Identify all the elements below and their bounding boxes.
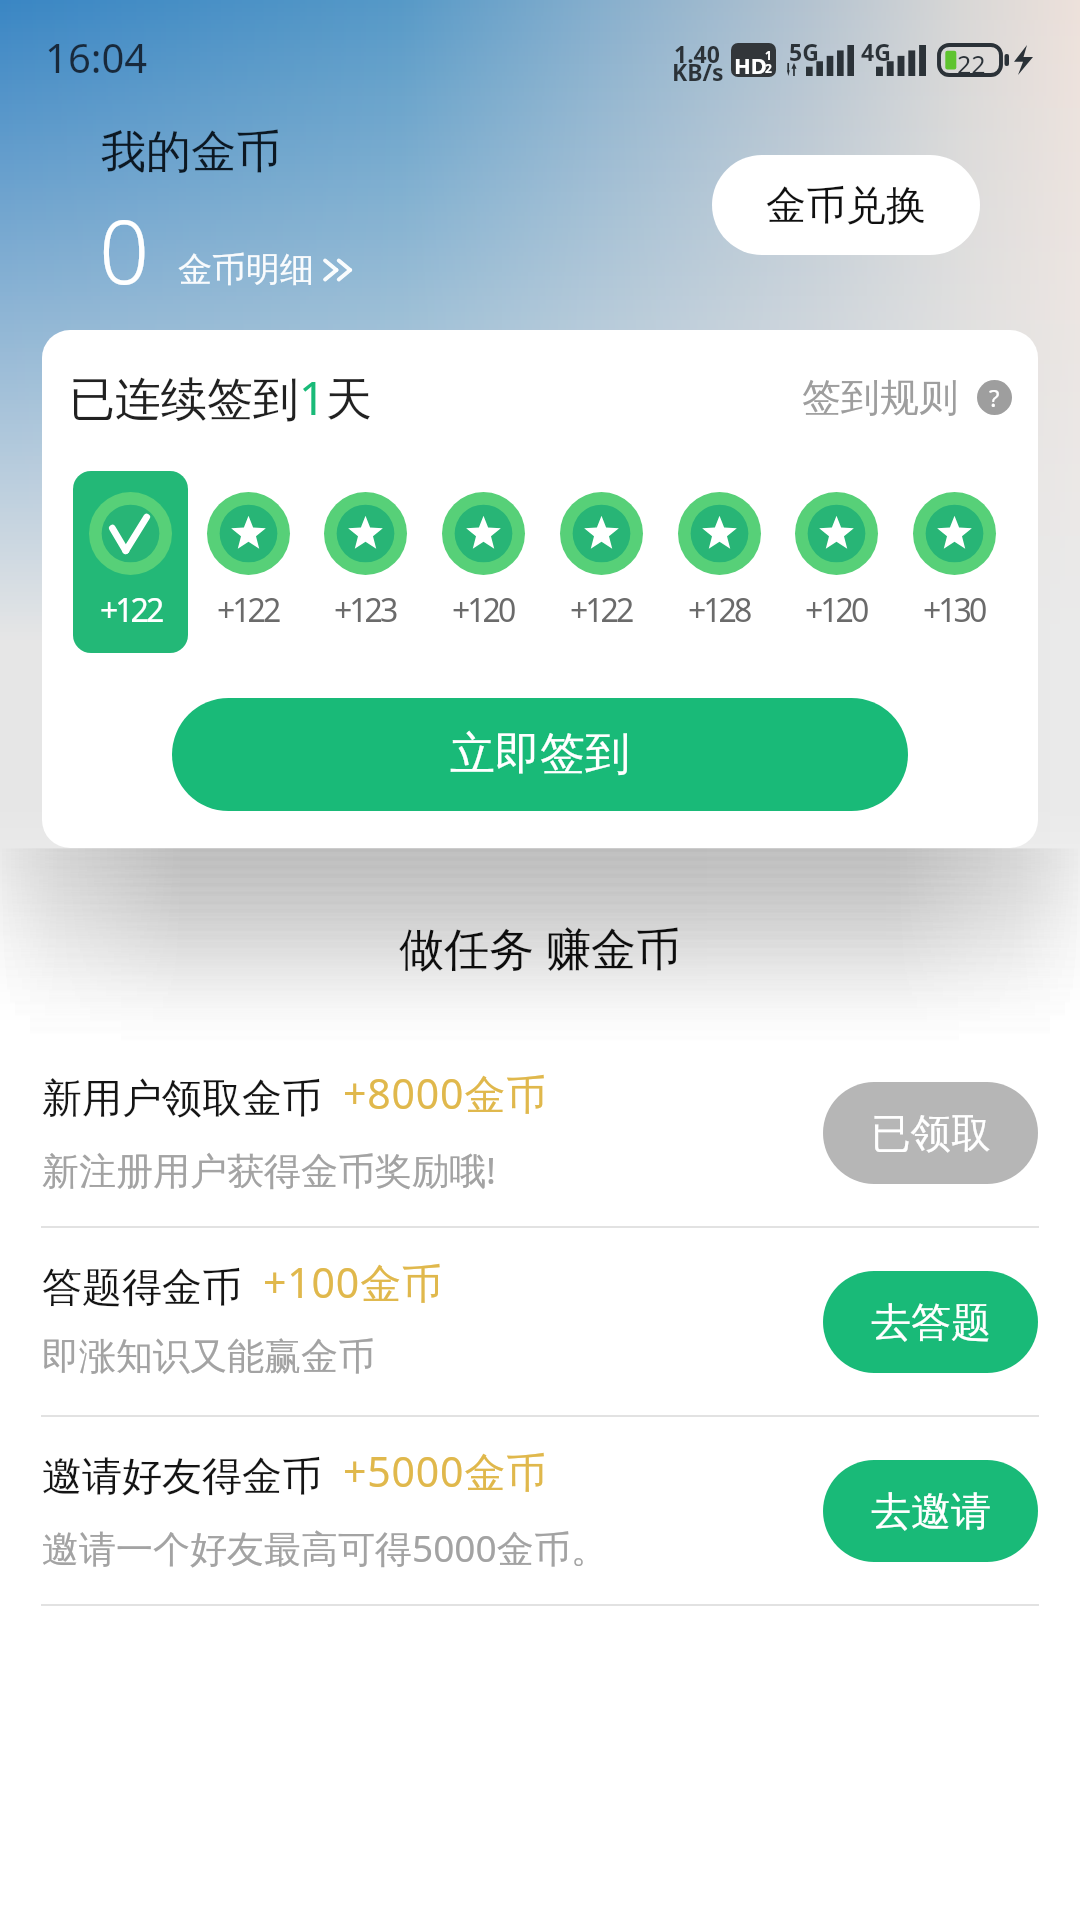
button[interactable]: +120 [783, 471, 889, 632]
staticText: 1.40 [674, 38, 720, 69]
staticText: 5G [789, 36, 819, 67]
button[interactable]: +120 [430, 471, 536, 632]
staticText: 16:04 [45, 30, 148, 84]
staticText: 去答题 [871, 1297, 991, 1347]
staticText: 0 [99, 190, 150, 310]
staticText: KB/s [672, 56, 724, 87]
staticText: +120 [452, 588, 514, 632]
staticText: 新用户领取金币 [42, 1073, 322, 1123]
button[interactable]: 去答题 [823, 1271, 1038, 1373]
staticText: +100金币 [263, 1254, 444, 1310]
staticText: 做任务 赚金币 [0, 917, 1080, 978]
staticText: 1 [299, 366, 326, 429]
button[interactable]: +130 [901, 471, 1007, 632]
staticText: +120 [805, 588, 867, 632]
staticText: 已领取 [871, 1108, 991, 1158]
button[interactable]: 签到规则 [802, 373, 1012, 422]
staticText: +123 [334, 588, 396, 632]
button[interactable]: +122 [195, 471, 301, 632]
staticText: 去邀请 [871, 1486, 991, 1536]
staticText: +122 [217, 588, 279, 632]
staticText: 4G [861, 36, 891, 67]
staticText: +5000金币 [343, 1443, 548, 1499]
staticText: +130 [923, 588, 985, 632]
staticText: +128 [688, 588, 750, 632]
staticText: 1 [765, 47, 772, 63]
staticText: 已连续签到 [69, 371, 299, 429]
staticText: ? [989, 381, 1000, 414]
staticText: 新注册用户获得金币奖励哦! [42, 1144, 496, 1195]
staticText: 金币明细 [178, 248, 314, 291]
button[interactable]: +123 [312, 471, 418, 632]
button[interactable]: +122 [73, 471, 188, 653]
button[interactable]: 已领取 [823, 1082, 1038, 1184]
staticText: 金币兑换 [766, 180, 926, 230]
staticText: 即涨知识又能赢金币 [42, 1333, 375, 1380]
staticText: HD [734, 50, 767, 77]
staticText: 2 [765, 60, 772, 76]
staticText: 天 [326, 371, 372, 429]
staticText: +8000金币 [343, 1065, 548, 1121]
button[interactable]: +128 [666, 471, 772, 632]
staticText: 签到规则 [802, 373, 958, 422]
button[interactable]: 金币明细 [178, 248, 357, 291]
staticText: 22 [957, 47, 986, 81]
button[interactable]: 去邀请 [823, 1460, 1038, 1562]
staticText: +122 [570, 588, 632, 632]
staticText: +122 [100, 588, 162, 632]
staticText: 邀请一个好友最高可得5000金币。 [42, 1522, 608, 1573]
button[interactable]: 立即签到 [172, 698, 908, 811]
staticText: 邀请好友得金币 [42, 1451, 322, 1501]
button[interactable]: 金币兑换 [712, 155, 980, 255]
staticText: 答题得金币 [42, 1262, 242, 1312]
staticText: 我的金币 [101, 124, 281, 181]
button[interactable]: +122 [548, 471, 654, 632]
staticText: 立即签到 [450, 726, 630, 783]
